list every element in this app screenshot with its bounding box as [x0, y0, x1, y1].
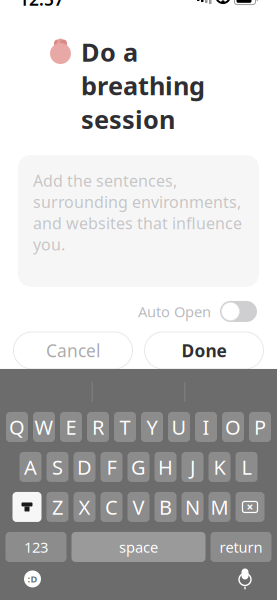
button[interactable]: Done — [144, 332, 263, 369]
staticText: Z — [52, 494, 63, 520]
button[interactable]: return — [210, 532, 271, 562]
button[interactable]: T — [114, 412, 136, 442]
staticText: F — [106, 454, 116, 480]
staticText: return — [219, 537, 262, 557]
button[interactable]: G — [127, 452, 149, 482]
staticText: N — [185, 494, 200, 520]
button[interactable]: U — [168, 412, 190, 442]
staticText: Cancel — [46, 339, 100, 362]
staticText: H — [158, 454, 173, 480]
staticText: B — [159, 494, 172, 520]
button[interactable]: O — [222, 412, 244, 442]
staticText: M — [210, 494, 228, 520]
button[interactable]: 123 — [5, 532, 66, 562]
staticText: :D — [27, 573, 37, 585]
button[interactable]: F — [100, 452, 122, 482]
staticText: X — [78, 494, 90, 520]
staticText: O — [225, 414, 241, 440]
button[interactable]: Q — [6, 412, 28, 442]
button[interactable]: Cancel — [13, 332, 132, 369]
button[interactable]: M — [208, 492, 230, 522]
button[interactable]: D — [73, 452, 95, 482]
staticText: Y — [146, 414, 157, 440]
button[interactable]: Delete — [235, 492, 264, 522]
button[interactable]: P — [249, 412, 271, 442]
staticText: Add the sentences, surrounding environme… — [33, 170, 242, 255]
staticText: 12:57 — [19, 0, 64, 10]
button[interactable]: J — [181, 452, 203, 482]
button[interactable]: I — [195, 412, 217, 442]
button[interactable]: B — [154, 492, 176, 522]
button[interactable]: X — [73, 492, 95, 522]
button[interactable]: E — [60, 412, 82, 442]
button[interactable]: K — [208, 452, 230, 482]
staticText: G — [131, 454, 146, 480]
staticText: C — [105, 494, 118, 520]
button[interactable]: Shift — [12, 492, 41, 522]
button[interactable]: H — [154, 452, 176, 482]
button[interactable]: W — [33, 412, 55, 442]
staticText: W — [34, 414, 53, 440]
button[interactable]: C — [100, 492, 122, 522]
staticText: Auto Open — [138, 302, 211, 321]
staticText: D — [77, 454, 92, 480]
staticText: U — [171, 414, 186, 440]
button[interactable]: Dictate — [237, 569, 253, 589]
button[interactable]: V — [127, 492, 149, 522]
staticText: Done — [181, 339, 226, 362]
button[interactable]: L — [235, 452, 257, 482]
staticText: × — [246, 499, 253, 515]
staticText: J — [190, 454, 195, 480]
staticText: V — [132, 494, 144, 520]
staticText: Q — [9, 414, 25, 440]
button[interactable]: R — [87, 412, 109, 442]
staticText: R — [92, 414, 104, 440]
staticText: space — [119, 537, 158, 557]
button[interactable]: N — [181, 492, 203, 522]
staticText: 123 — [24, 537, 48, 557]
staticText: A — [24, 454, 37, 480]
staticText: P — [254, 414, 266, 440]
button[interactable]: Y — [141, 412, 163, 442]
staticText: T — [119, 414, 130, 440]
staticText: K — [213, 454, 225, 480]
staticText: Do a breathing session — [81, 35, 205, 136]
button[interactable]: Auto Open — [138, 301, 257, 322]
staticText: S — [52, 454, 63, 480]
button[interactable]: S — [46, 452, 68, 482]
button[interactable]: Emoji — [24, 570, 41, 587]
button[interactable]: Add the sentences, surrounding environme… — [18, 155, 259, 287]
staticText: E — [65, 414, 76, 440]
button[interactable]: A — [19, 452, 41, 482]
staticText: L — [241, 454, 251, 480]
button[interactable]: space — [71, 532, 205, 562]
staticText: I — [202, 414, 209, 440]
button[interactable]: Z — [46, 492, 68, 522]
